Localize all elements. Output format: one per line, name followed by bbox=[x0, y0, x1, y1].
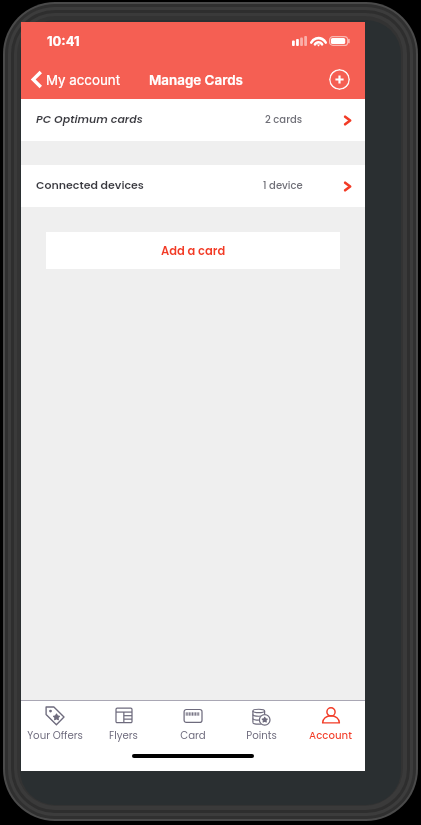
staticText: PC Optimum cards bbox=[36, 111, 143, 126]
button[interactable]: Card bbox=[158, 701, 227, 748]
staticText: 10:41 bbox=[47, 33, 80, 49]
staticText: Points bbox=[246, 728, 277, 742]
button[interactable]: Your Offers bbox=[21, 701, 89, 748]
button[interactable]: PC Optimum cards bbox=[21, 99, 365, 141]
staticText: Flyers bbox=[109, 728, 138, 742]
button[interactable]: Flyers bbox=[89, 701, 158, 748]
staticText: My account bbox=[46, 72, 120, 88]
staticText: 1 device bbox=[263, 178, 303, 192]
button[interactable]: Account bbox=[296, 701, 365, 748]
button[interactable]: Add a card bbox=[46, 232, 340, 269]
staticText: Connected devices bbox=[36, 177, 144, 192]
button[interactable]: My account bbox=[21, 60, 130, 99]
button[interactable]: Add a card bbox=[329, 69, 350, 90]
staticText: Manage Cards bbox=[149, 72, 243, 88]
staticText: Your Offers bbox=[27, 728, 83, 742]
staticText: Account bbox=[309, 728, 352, 742]
button[interactable]: Points bbox=[227, 701, 296, 748]
staticText: Card bbox=[180, 728, 206, 742]
staticText: Add a card bbox=[161, 243, 226, 259]
button[interactable]: Connected devices bbox=[21, 165, 365, 207]
staticText: 2 cards bbox=[265, 112, 303, 126]
